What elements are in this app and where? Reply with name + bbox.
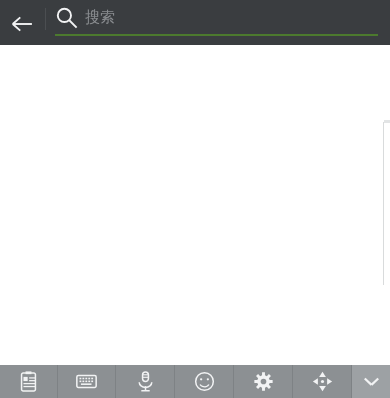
staticText: 搜索 — [85, 8, 115, 27]
button[interactable]: Back — [4, 6, 40, 42]
button[interactable]: Hide keyboard — [352, 365, 390, 398]
button[interactable]: 搜索 — [56, 0, 390, 34]
button[interactable]: Settings — [234, 365, 292, 398]
button[interactable]: Move cursor — [293, 365, 351, 398]
button[interactable]: Emoji — [175, 365, 233, 398]
button[interactable]: Voice input — [116, 365, 174, 398]
button[interactable]: Clipboard — [0, 365, 57, 398]
button[interactable]: Keyboard — [58, 365, 115, 398]
